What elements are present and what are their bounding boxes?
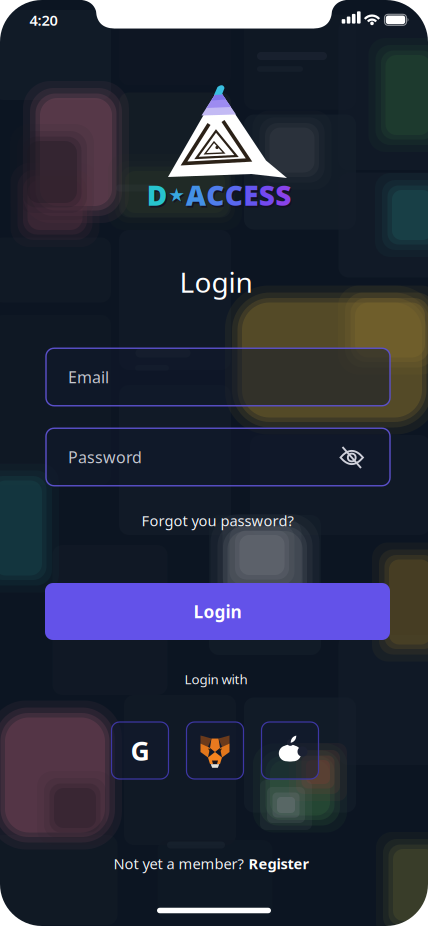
button[interactable]: Register [248, 854, 309, 873]
staticText: C [207, 178, 225, 215]
staticText: D [148, 178, 169, 215]
staticText: Register [248, 854, 309, 873]
staticText: S [275, 176, 291, 214]
button[interactable]: Password [46, 428, 390, 486]
staticText: A [186, 176, 206, 214]
staticText: Not yet a member? [113, 854, 243, 873]
button[interactable]: Sign in with MetaMask [186, 722, 243, 779]
staticText: S [259, 176, 275, 214]
staticText: G [130, 733, 149, 768]
staticText: ★ [169, 186, 186, 207]
staticText: A [187, 178, 207, 215]
staticText: S [276, 178, 292, 215]
button[interactable]: Sign in with Google [111, 722, 168, 779]
button[interactable]: Show password [335, 440, 369, 474]
staticText: C [225, 176, 243, 214]
staticText: E [243, 176, 258, 214]
staticText: Email [68, 366, 109, 388]
staticText: Login [193, 600, 241, 623]
staticText: Login [179, 263, 252, 301]
button[interactable]: Login [45, 583, 390, 640]
staticText: Password [68, 446, 142, 468]
staticText: Login with [184, 670, 247, 688]
button[interactable]: Email [46, 348, 390, 406]
staticText: C [226, 178, 244, 215]
staticText: S [260, 178, 276, 215]
staticText: Forgot you password? [141, 511, 293, 530]
staticText: ★ [168, 184, 185, 206]
staticText: D [147, 176, 168, 214]
staticText: E [244, 178, 259, 215]
button[interactable]: Forgot you password? [141, 511, 293, 530]
staticText: C [206, 176, 224, 214]
staticText: 4:20 [29, 10, 57, 30]
button[interactable]: Sign in with Apple [261, 722, 318, 779]
